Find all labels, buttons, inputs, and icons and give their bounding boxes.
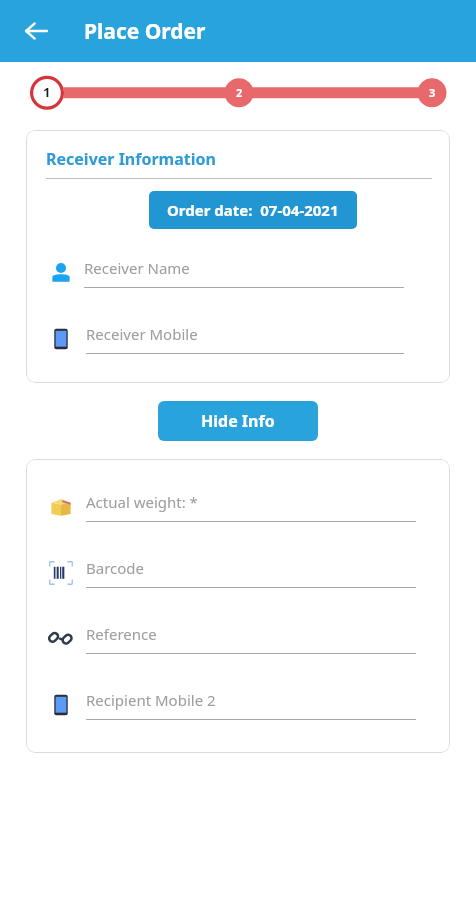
staticText: Receiver Information (46, 148, 216, 170)
button[interactable]: Back (12, 7, 60, 55)
button[interactable]: Step 1 (31, 77, 63, 107)
button[interactable]: Reference (26, 617, 450, 661)
staticText: 2 (236, 85, 243, 100)
staticText: Actual weight: * (86, 492, 198, 512)
staticText: Reference (86, 624, 157, 644)
button[interactable]: Hide Info (158, 401, 318, 441)
button[interactable]: Recipient Mobile 2 (26, 683, 450, 727)
button[interactable]: Barcode (26, 551, 450, 595)
button[interactable]: Receiver Name (26, 251, 450, 295)
button[interactable]: Order date: 07-04-2021 (149, 191, 357, 229)
staticText: Order date: 07-04-2021 (167, 200, 339, 220)
button[interactable]: Step 2 (223, 77, 255, 107)
button[interactable]: Receiver Mobile (26, 317, 450, 361)
staticText: Recipient Mobile 2 (86, 690, 216, 710)
button[interactable]: Actual weight: * (26, 485, 450, 529)
button[interactable]: Step 3 (416, 77, 448, 107)
staticText: Barcode (86, 558, 145, 578)
staticText: Receiver Name (84, 258, 190, 278)
staticText: 1 (43, 83, 51, 101)
staticText: Hide Info (201, 410, 275, 432)
staticText: Place Order (84, 17, 206, 46)
staticText: 3 (429, 85, 436, 100)
staticText: Receiver Mobile (86, 324, 198, 344)
